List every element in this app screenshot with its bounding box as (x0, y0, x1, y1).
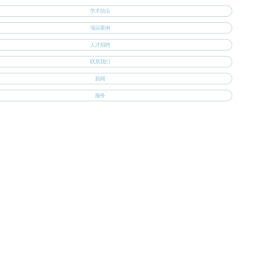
staticText: 学术前沿 (90, 8, 110, 14)
staticText: 人才招聘 (90, 42, 110, 48)
staticText: 联系我们 (90, 58, 110, 65)
button[interactable]: 项目案例 (0, 22, 232, 33)
staticText: 新闻 (95, 75, 105, 82)
button[interactable]: 学术前沿 (0, 6, 232, 16)
button[interactable]: 联系我们 (0, 56, 232, 67)
staticText: 服务 (95, 92, 105, 99)
staticText: 项目案例 (90, 25, 110, 31)
button[interactable]: 服务 (0, 90, 232, 101)
button[interactable]: 人才招聘 (0, 39, 232, 50)
button[interactable]: 新闻 (0, 73, 232, 84)
